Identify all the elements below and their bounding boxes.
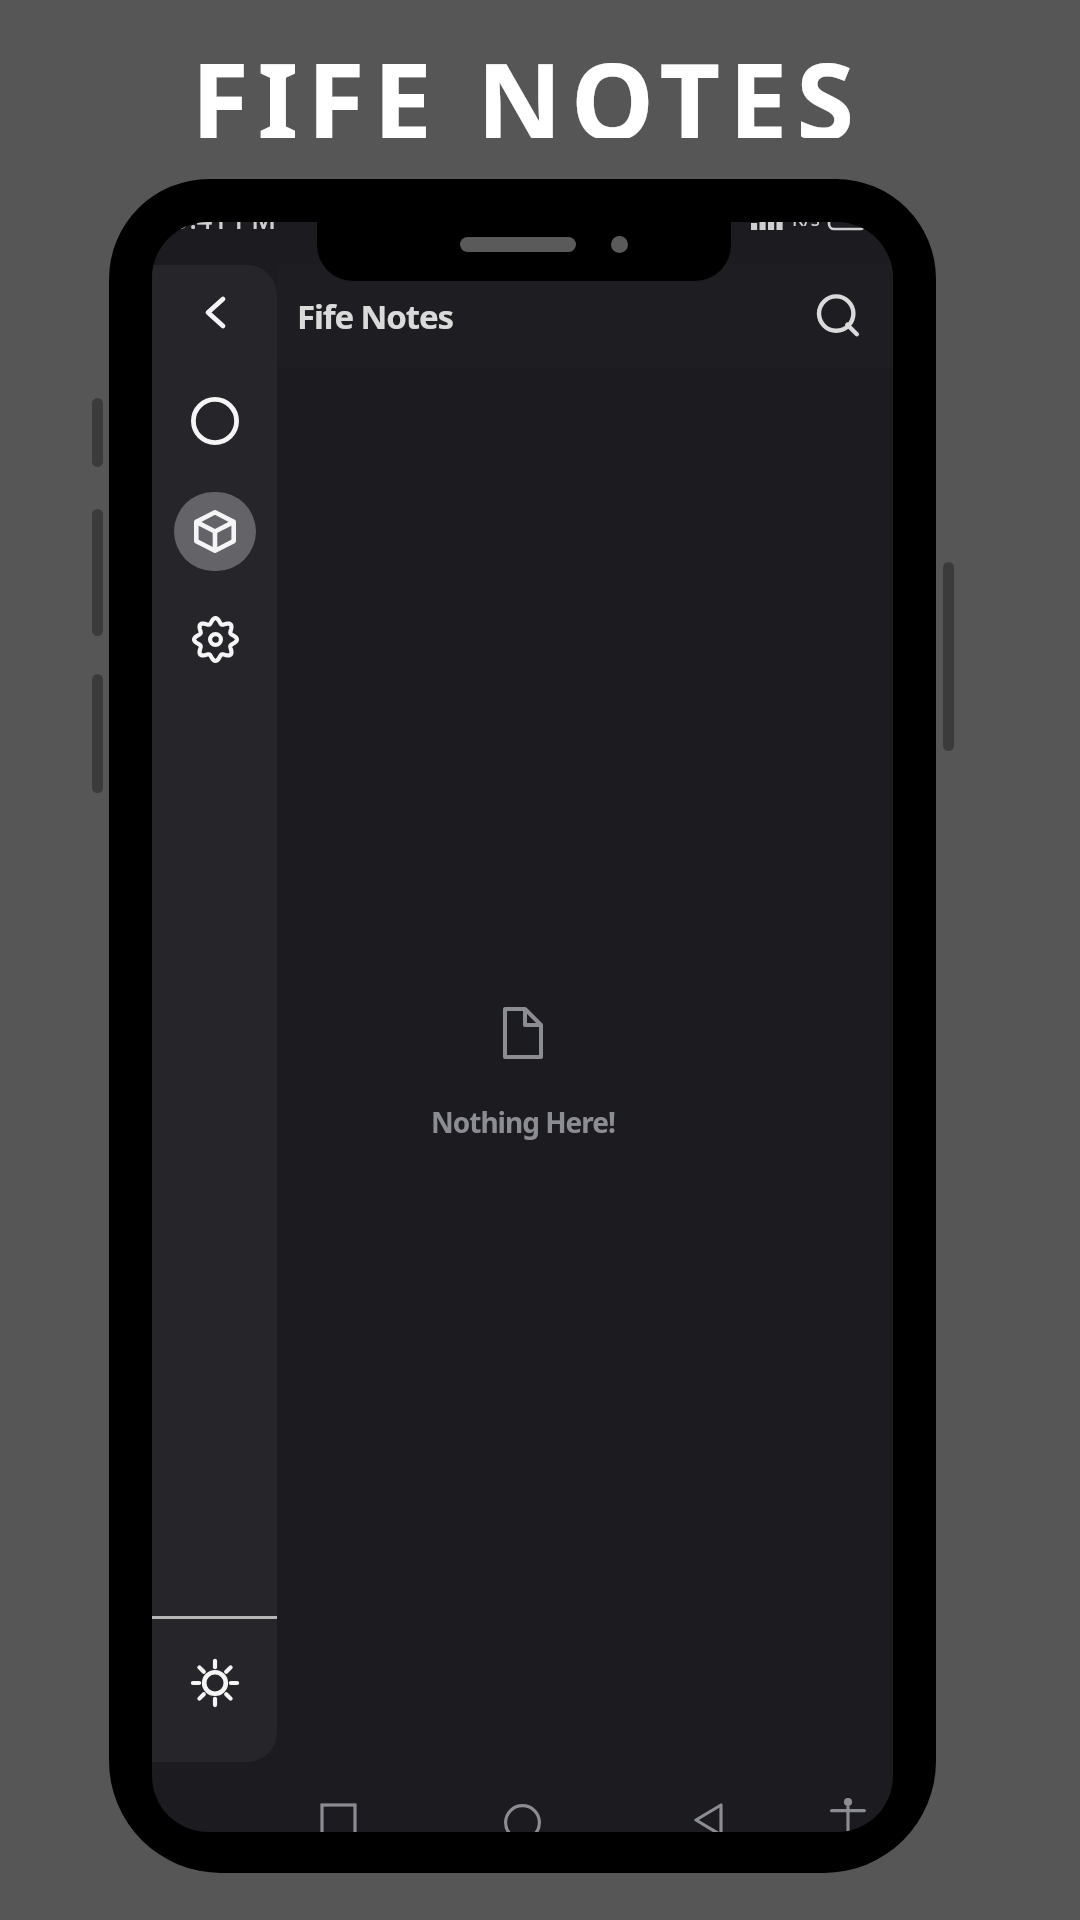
staticText: K/s — [792, 222, 820, 232]
button[interactable]: Boxes — [174, 492, 256, 571]
button[interactable]: Brightness — [152, 1619, 277, 1762]
staticText: Fife Notes — [297, 294, 454, 339]
button[interactable]: Settings — [171, 598, 259, 680]
staticText: 9:41 PM — [174, 222, 276, 237]
staticText: FIFE NOTES — [191, 28, 863, 138]
button[interactable]: Back — [180, 277, 250, 347]
button[interactable]: Recent apps — [292, 1783, 384, 1832]
button[interactable]: Search — [801, 279, 875, 353]
button[interactable]: Notes — [171, 380, 259, 462]
button[interactable]: Back — [662, 1781, 754, 1832]
button[interactable]: Accessibility — [802, 1775, 893, 1832]
button[interactable]: Home — [476, 1782, 568, 1832]
staticText: Nothing Here! — [431, 1103, 615, 1141]
